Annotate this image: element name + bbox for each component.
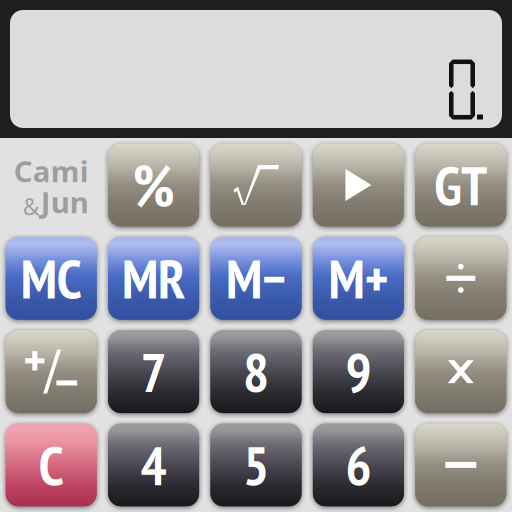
button[interactable]: GT xyxy=(415,143,506,226)
button[interactable]: Square root xyxy=(210,143,301,226)
staticText: M− xyxy=(226,243,286,314)
button[interactable]: M− xyxy=(210,237,301,320)
staticText: 7 xyxy=(141,336,167,407)
button[interactable]: M+ xyxy=(313,237,404,320)
staticText: M+ xyxy=(328,243,388,314)
button[interactable]: C xyxy=(6,423,97,506)
staticText: % xyxy=(133,147,175,223)
button[interactable]: 9 xyxy=(313,330,404,413)
button[interactable]: MR xyxy=(108,237,199,320)
staticText: 5 xyxy=(243,429,269,500)
staticText: MC xyxy=(21,243,82,314)
staticText: MR xyxy=(122,243,185,314)
staticText: 6 xyxy=(345,429,371,500)
button[interactable]: Multiply xyxy=(415,330,506,413)
button[interactable]: 5 xyxy=(210,423,301,506)
button[interactable]: Divide xyxy=(415,237,506,320)
button[interactable]: 4 xyxy=(108,423,199,506)
staticText: GT xyxy=(434,150,487,220)
button[interactable]: 6 xyxy=(313,423,404,506)
button[interactable]: MC xyxy=(6,237,97,320)
button[interactable]: 8 xyxy=(210,330,301,413)
button[interactable]: Next xyxy=(313,143,404,226)
staticText: 4 xyxy=(141,429,167,500)
staticText: 9 xyxy=(345,336,371,407)
button[interactable]: 7 xyxy=(108,330,199,413)
button[interactable]: % xyxy=(108,143,199,226)
staticText: C xyxy=(39,429,64,500)
staticText: Cami xyxy=(14,151,89,190)
button[interactable]: Plus or minus xyxy=(6,330,97,413)
button[interactable]: Minus xyxy=(415,423,506,506)
staticText: 8 xyxy=(243,336,269,407)
staticText: & xyxy=(23,191,40,221)
staticText: Jun xyxy=(41,182,89,221)
